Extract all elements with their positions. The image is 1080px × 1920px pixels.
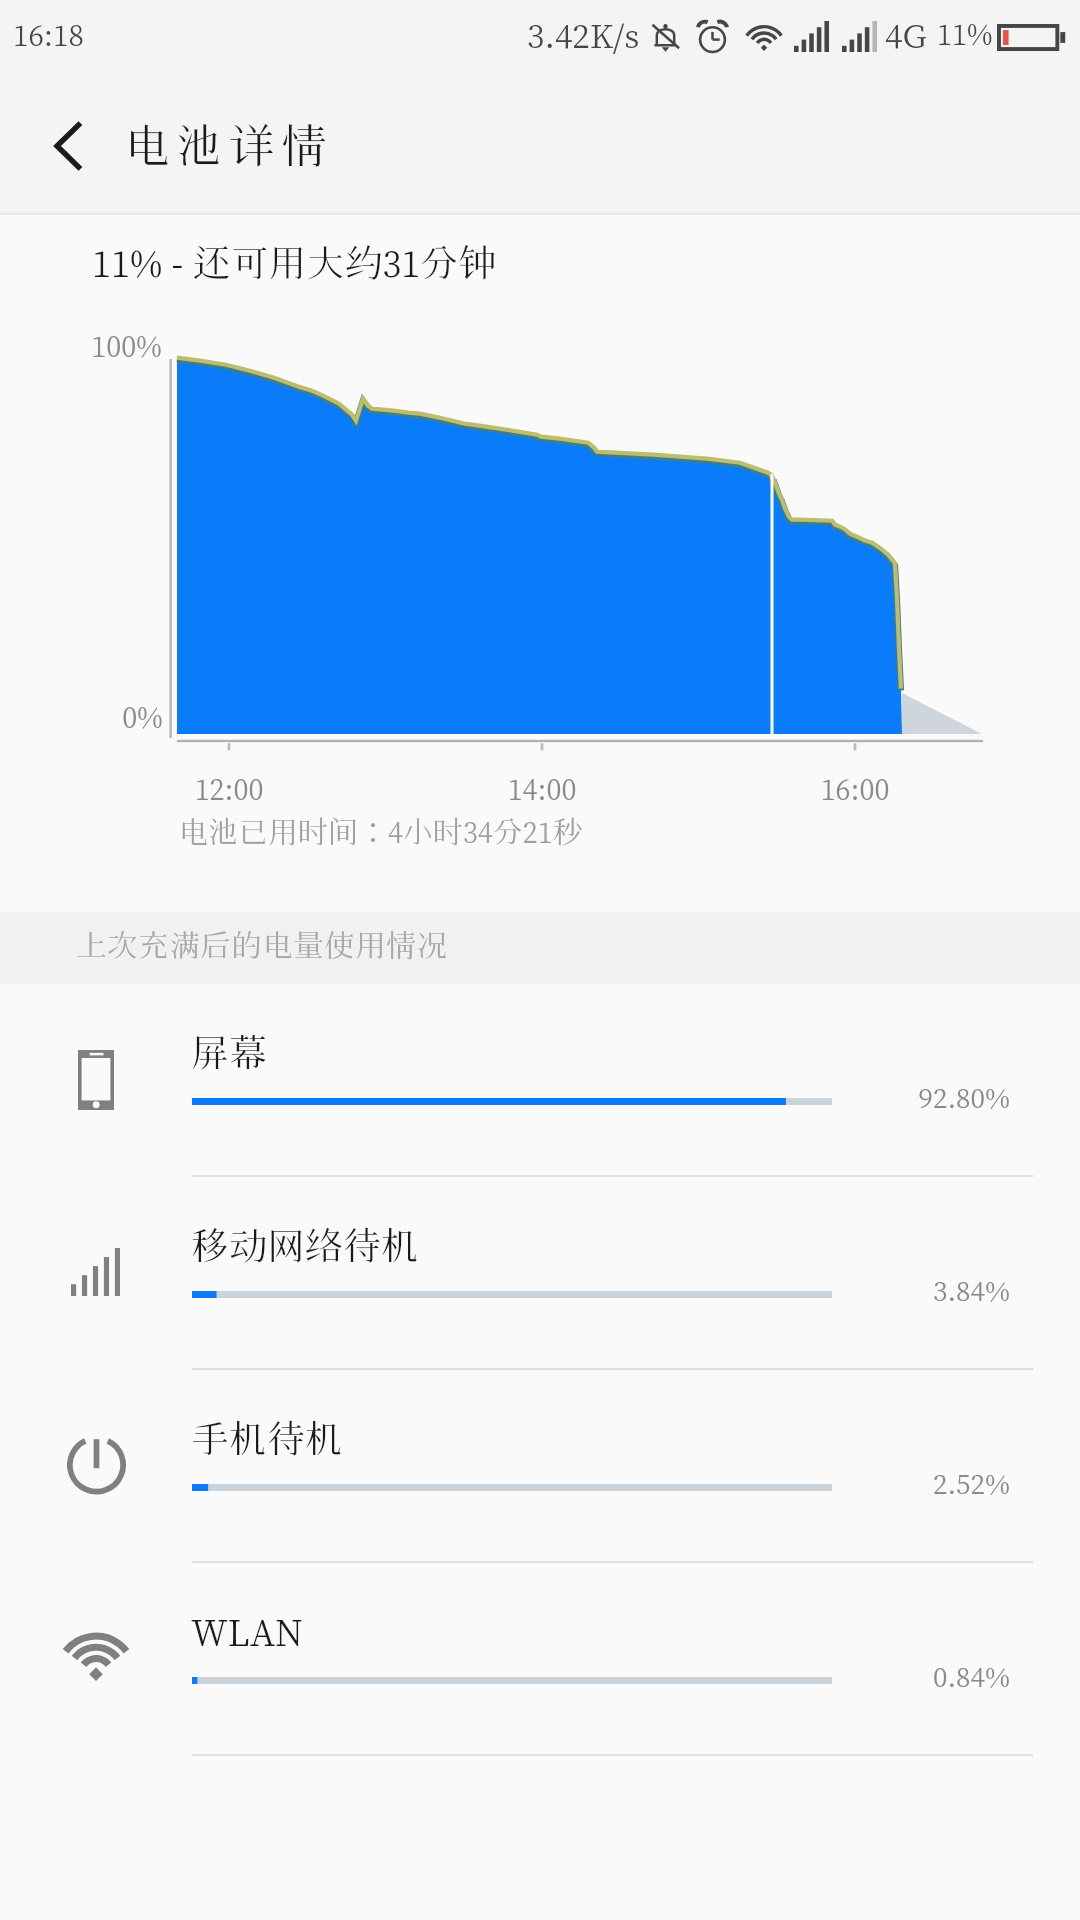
staticText: 3.84% [849,1272,1010,1307]
staticText: 11% - 还可用大约31分钟 [92,239,497,286]
staticText: 电池已用时间：4小时34分21秒 [178,813,583,850]
staticText: 14:00 [452,770,632,807]
staticText: 手机待机 [191,1415,344,1462]
staticText: 16:00 [765,770,945,807]
staticText: 移动网络待机 [191,1222,420,1269]
staticText: 11% [937,15,993,52]
staticText: 上次充满后的电量使用情况 [76,926,448,964]
staticText: 100% [0,327,162,364]
staticText: 12:00 [139,770,319,807]
staticText: 3.42K/s [527,13,640,56]
staticText: 4G [885,13,927,56]
staticText: 0% [0,698,163,735]
staticText: 0.84% [849,1658,1010,1693]
staticText: 16:18 [13,15,84,53]
staticText: 电池详情 [124,117,334,173]
button[interactable]: 屏幕 [0,984,1080,1177]
button[interactable]: Back [14,91,124,201]
staticText: WLAN [191,1608,303,1655]
staticText: 2.52% [849,1465,1010,1500]
button[interactable]: 手机待机 [0,1370,1080,1563]
staticText: 92.80% [849,1079,1010,1114]
button[interactable]: 移动网络待机 [0,1177,1080,1370]
button[interactable]: WLAN [0,1563,1080,1756]
staticText: 屏幕 [191,1029,268,1076]
